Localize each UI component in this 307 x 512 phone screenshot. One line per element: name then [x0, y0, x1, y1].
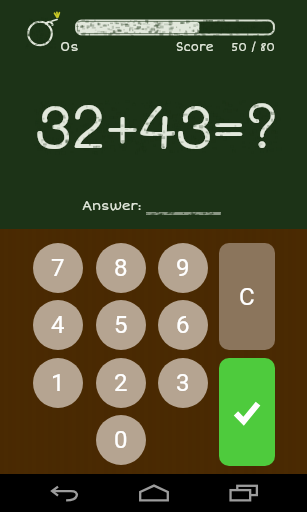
staticText: 0	[114, 426, 128, 454]
button[interactable]: 5	[96, 300, 146, 350]
button[interactable]: Recent apps	[205, 474, 283, 512]
button[interactable]: Home	[115, 474, 193, 512]
staticText: 9	[176, 254, 190, 282]
button[interactable]: Back	[25, 474, 103, 512]
button[interactable]: 0	[96, 415, 146, 465]
staticText: 50 / 80	[231, 41, 275, 55]
staticText: 6	[176, 311, 190, 339]
button[interactable]: 1	[33, 358, 83, 408]
staticText: 4	[51, 311, 65, 339]
button[interactable]: 8	[96, 243, 146, 293]
staticText: 32+43=?	[3, 84, 307, 165]
staticText: 8	[114, 254, 128, 282]
staticText: C	[239, 283, 255, 311]
button[interactable]: 2	[96, 358, 146, 408]
staticText: Score	[176, 40, 214, 55]
staticText: 1	[51, 369, 65, 397]
staticText: Answer:	[82, 198, 142, 214]
button[interactable]: Submit answer	[219, 358, 275, 466]
staticText: 2	[114, 369, 128, 397]
button[interactable]: 9	[158, 243, 208, 293]
staticText: 0s	[60, 39, 79, 55]
staticText: 3	[176, 369, 190, 397]
staticText: 7	[51, 254, 65, 282]
button[interactable]: 7	[33, 243, 83, 293]
staticText: 5	[114, 311, 128, 339]
button[interactable]: 6	[158, 300, 208, 350]
button[interactable]: C	[219, 243, 275, 350]
button[interactable]: 3	[158, 358, 208, 408]
button[interactable]: 4	[33, 300, 83, 350]
